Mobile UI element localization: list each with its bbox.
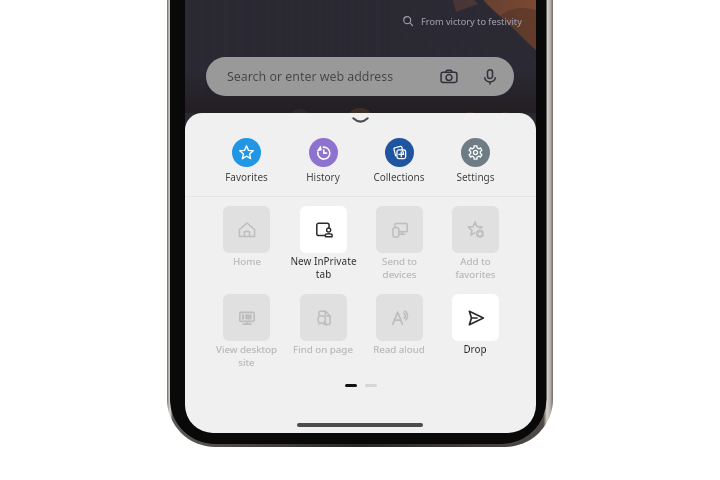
staticText: Search or enter web address	[227, 68, 394, 85]
staticText: Drop	[463, 343, 487, 356]
staticText: New InPrivate tab	[290, 255, 357, 281]
button[interactable]: Home	[208, 206, 285, 268]
button[interactable]: New InPrivate tab	[285, 206, 361, 281]
staticText: History	[306, 170, 340, 184]
staticText: View desktop site	[216, 343, 277, 369]
staticText: From victory to festivity	[421, 15, 522, 28]
staticText: Settings	[456, 170, 495, 184]
button[interactable]: Drop	[437, 294, 513, 356]
button[interactable]: Find on page	[285, 294, 361, 356]
button[interactable]: Read aloud	[361, 294, 437, 356]
button[interactable]: Search with camera	[440, 68, 458, 86]
staticText: Read aloud	[373, 343, 425, 356]
staticText: Send to devices	[382, 255, 417, 281]
button[interactable]: Collections	[361, 138, 437, 184]
button[interactable]: Favorites	[208, 138, 285, 184]
button[interactable]: History	[285, 138, 361, 184]
staticText: Favorites	[225, 170, 268, 184]
staticText: Add to favorites	[455, 255, 496, 281]
button[interactable]: Settings	[437, 138, 513, 184]
staticText: Find on page	[293, 343, 353, 356]
staticText: Home	[233, 255, 261, 268]
staticText: Collections	[373, 170, 425, 184]
button[interactable]: View desktop site	[208, 294, 285, 369]
button[interactable]: Add to favorites	[437, 206, 513, 281]
button[interactable]: Voice search	[481, 68, 499, 86]
button[interactable]: Search or enter web address	[206, 57, 514, 96]
button[interactable]: Send to devices	[361, 206, 437, 281]
